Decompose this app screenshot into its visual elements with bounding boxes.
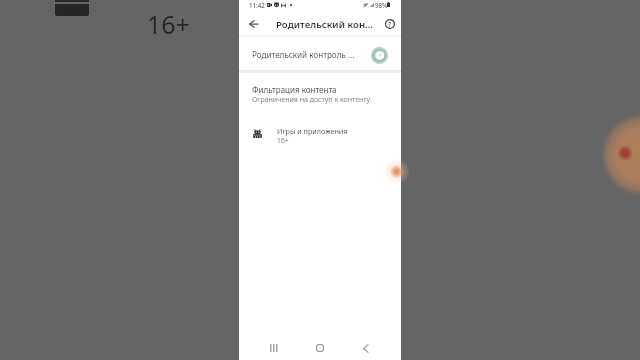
staticText: 16+ xyxy=(277,136,289,145)
button[interactable]: Back xyxy=(354,337,376,359)
staticText: 11:42 xyxy=(249,1,265,9)
button[interactable]: Home xyxy=(309,337,331,359)
staticText: 16+ xyxy=(147,7,190,41)
button[interactable]: Help xyxy=(379,15,399,37)
button[interactable]: Back xyxy=(242,15,263,37)
staticText: Игры и приложения xyxy=(277,126,348,136)
staticText: Родительский кон… xyxy=(276,18,374,31)
button[interactable]: Родительский контроль … xyxy=(239,38,401,70)
staticText: Ограничения на доступ к контенту xyxy=(252,95,371,105)
button[interactable]: Recent apps xyxy=(263,337,285,359)
staticText: Фильтрация контента xyxy=(252,84,337,95)
staticText: ? xyxy=(388,19,392,29)
staticText: Родительский контроль … xyxy=(252,49,355,60)
staticText: 98% xyxy=(375,1,388,9)
button[interactable]: Игры и приложения xyxy=(239,120,401,148)
